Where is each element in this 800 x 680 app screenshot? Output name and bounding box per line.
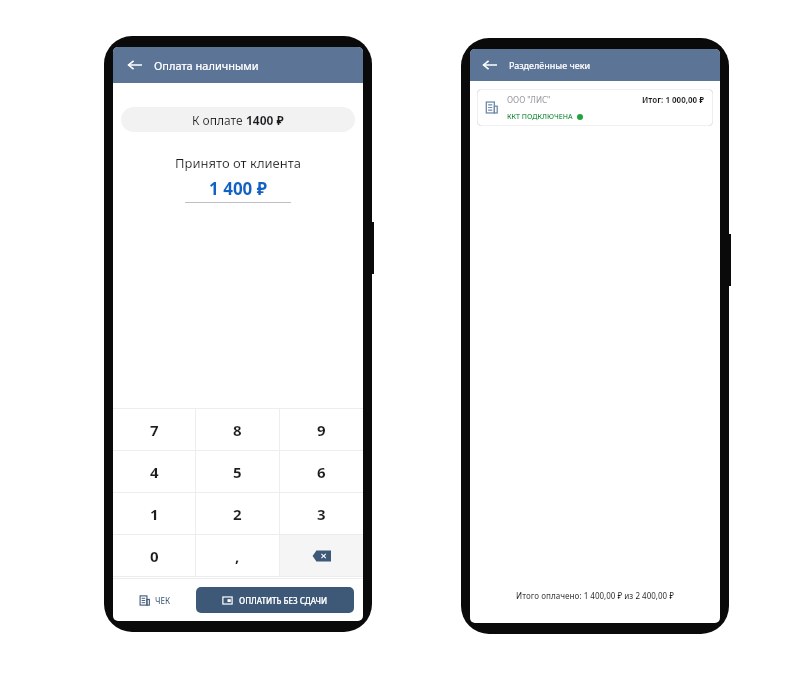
button[interactable]: Back	[480, 55, 500, 75]
staticText: Оплата наличными	[154, 58, 259, 73]
staticText: ,	[235, 546, 240, 566]
staticText: Итого оплачено: 1 400,00 ₽ из 2 400,00 ₽	[470, 590, 720, 601]
staticText: 5	[233, 462, 242, 482]
staticText: Итог: 1 000,00 ₽	[642, 94, 705, 105]
staticText: К оплате	[192, 112, 246, 128]
staticText: ККТ ПОДКЛЮЧЕНА	[507, 112, 573, 122]
button[interactable]: 8	[196, 409, 279, 450]
button[interactable]: ,	[196, 535, 279, 576]
staticText: 8	[233, 420, 242, 440]
button[interactable]: 1	[113, 493, 195, 534]
button[interactable]: 5	[196, 451, 279, 492]
button[interactable]: 3	[280, 493, 363, 534]
button[interactable]: К оплате	[121, 107, 355, 132]
staticText: 4	[150, 462, 159, 482]
staticText: 9	[317, 420, 326, 440]
button[interactable]: Backspace	[280, 535, 363, 576]
staticText: 1	[150, 504, 159, 524]
button[interactable]: 6	[280, 451, 363, 492]
staticText: Разделённые чеки	[509, 59, 591, 71]
button[interactable]: 4	[113, 451, 195, 492]
button[interactable]: Back	[125, 55, 145, 75]
button[interactable]: ООО "ЛИС"	[477, 89, 713, 126]
staticText: 2	[233, 504, 242, 524]
staticText: 1 400 ₽	[113, 177, 363, 200]
button[interactable]: ОПЛАТИТЬ БЕЗ СДАЧИ	[196, 587, 354, 613]
button[interactable]: 7	[113, 409, 195, 450]
staticText: ООО "ЛИС"	[507, 94, 551, 105]
staticText: 7	[150, 420, 159, 440]
staticText: ОПЛАТИТЬ БЕЗ СДАЧИ	[239, 595, 328, 606]
staticText: ЧЕК	[155, 595, 171, 606]
button[interactable]: 9	[280, 409, 363, 450]
button[interactable]: ЧЕК	[122, 587, 188, 613]
button[interactable]: 0	[113, 535, 195, 576]
button[interactable]: 2	[196, 493, 279, 534]
staticText: 3	[317, 504, 326, 524]
staticText: Принято от клиента	[113, 154, 363, 172]
staticText: 1400 ₽	[246, 112, 284, 128]
staticText: 6	[317, 462, 326, 482]
staticText: 0	[150, 546, 159, 566]
